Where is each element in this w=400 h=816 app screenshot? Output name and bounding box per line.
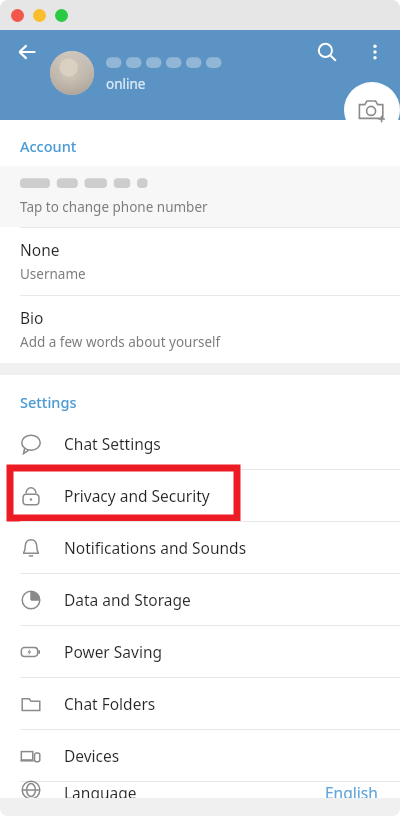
staticText: Chat Settings <box>64 433 161 454</box>
staticText: Language <box>64 782 137 798</box>
staticText: Tap to change phone number <box>20 198 208 216</box>
button[interactable]: Notifications and Sounds <box>0 522 400 573</box>
staticText: Chat Folders <box>64 693 156 714</box>
button[interactable]: Data and Storage <box>0 574 400 625</box>
staticText: Devices <box>64 745 120 766</box>
staticText: Username <box>20 265 86 283</box>
button[interactable]: Change profile photo <box>344 82 400 138</box>
button[interactable]: Power Saving <box>0 626 400 677</box>
button[interactable]: Search <box>309 34 345 70</box>
button[interactable]: Back <box>9 34 45 70</box>
staticText: None <box>20 239 60 260</box>
staticText: English <box>325 782 378 798</box>
staticText: Data and Storage <box>64 589 191 610</box>
staticText: online <box>106 75 146 93</box>
button[interactable]: Bio <box>0 296 400 363</box>
button[interactable]: Chat Settings <box>0 418 400 469</box>
button[interactable]: online <box>50 42 226 104</box>
button[interactable]: Devices <box>0 730 400 781</box>
staticText: Bio <box>20 307 44 328</box>
button[interactable]: Tap to change phone number <box>0 166 400 227</box>
staticText: Account <box>20 136 77 156</box>
button[interactable]: Language <box>0 782 400 798</box>
button[interactable]: Privacy and Security <box>0 470 400 521</box>
staticText: Privacy and Security <box>64 485 210 506</box>
staticText: Settings <box>20 392 77 412</box>
button[interactable]: Chat Folders <box>0 678 400 729</box>
staticText: Power Saving <box>64 641 162 662</box>
button[interactable]: More options <box>357 34 393 70</box>
staticText: Notifications and Sounds <box>64 537 247 558</box>
button[interactable]: None <box>0 228 400 295</box>
staticText: Add a few words about yourself <box>20 333 221 351</box>
